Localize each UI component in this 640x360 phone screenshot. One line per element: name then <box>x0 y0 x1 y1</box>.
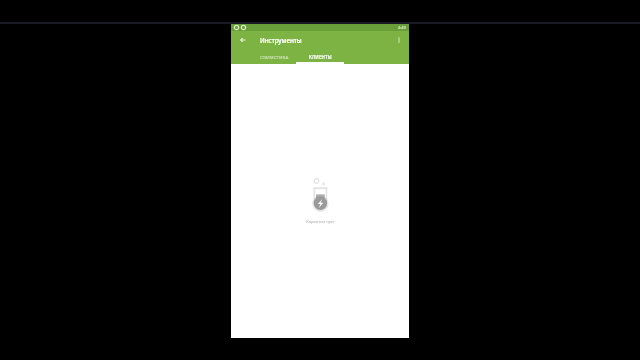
button[interactable]: КЛИЕНТЫ <box>296 49 344 64</box>
button[interactable]: More options <box>393 34 405 46</box>
button[interactable]: СТАТИСТИКА <box>250 49 298 64</box>
button[interactable]: Back <box>237 34 249 46</box>
staticText: 4:49 <box>398 25 406 30</box>
staticText: СТАТИСТИКА <box>260 54 289 60</box>
staticText: Карантин пуст <box>306 219 335 225</box>
staticText: Инструменты <box>260 36 302 44</box>
staticText: КЛИЕНТЫ <box>309 54 332 60</box>
